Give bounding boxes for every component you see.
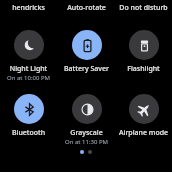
button[interactable]: Airplane mode [115, 94, 172, 138]
staticText: Flashlight [116, 64, 171, 74]
button[interactable]: Night Light [0, 30, 57, 82]
button[interactable]: Flashlight [115, 30, 172, 74]
staticText: Auto-rotate [58, 3, 115, 13]
staticText: Bluetooth [1, 128, 56, 138]
staticText: On at 11:30 PM [59, 138, 114, 146]
button[interactable]: Auto-rotate [58, 3, 115, 13]
button[interactable]: Do not disturb [115, 3, 172, 13]
button[interactable]: Battery Saver [58, 30, 115, 74]
button[interactable]: Bluetooth [0, 94, 57, 138]
staticText: Airplane mode [116, 128, 171, 138]
staticText: hendricks [0, 3, 57, 13]
button[interactable]: Grayscale [58, 94, 115, 146]
staticText: Night Light [1, 64, 56, 74]
staticText: Grayscale [59, 128, 114, 138]
staticText: Battery Saver [59, 64, 114, 74]
staticText: On at 10:00 PM [1, 74, 56, 82]
button[interactable]: hendricks [0, 3, 57, 13]
staticText: Do not disturb [115, 3, 172, 13]
